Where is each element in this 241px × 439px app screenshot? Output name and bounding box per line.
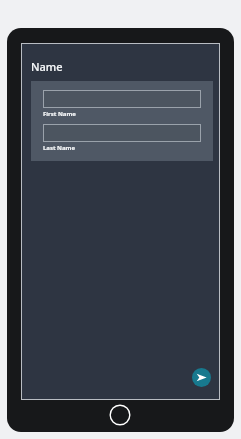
staticText: First Name xyxy=(43,110,76,118)
button[interactable]: First Name xyxy=(31,81,213,161)
staticText: Last Name xyxy=(43,144,76,152)
button[interactable] xyxy=(43,90,201,108)
button[interactable]: Home xyxy=(109,404,131,426)
staticText: Name xyxy=(31,59,63,74)
button[interactable]: Send xyxy=(192,368,211,387)
button[interactable] xyxy=(43,124,201,142)
